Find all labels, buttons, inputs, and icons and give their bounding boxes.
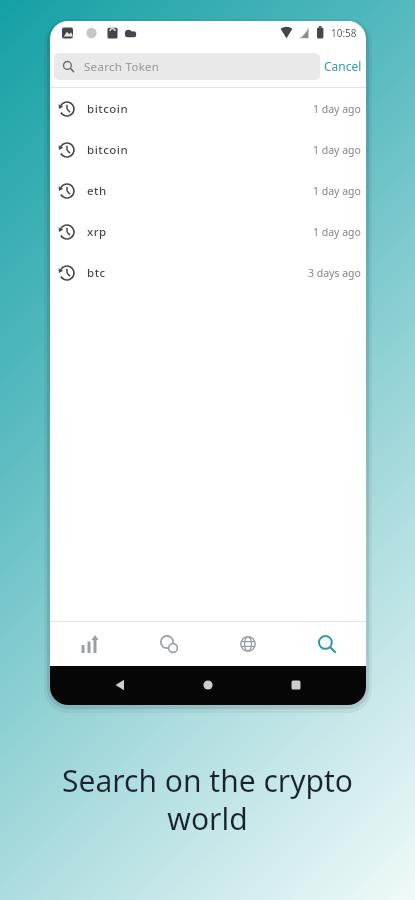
button[interactable] (50, 622, 129, 666)
button[interactable]: eth (50, 170, 366, 211)
button[interactable] (287, 622, 366, 666)
staticText: Search on the crypto world (62, 760, 353, 839)
button[interactable] (164, 670, 252, 700)
staticText: bitcoin (87, 101, 129, 117)
button[interactable]: Cancel (324, 45, 362, 87)
staticText: xrp (87, 224, 107, 240)
staticText: 1 day ago (313, 102, 361, 116)
button[interactable] (76, 670, 164, 700)
staticText: 10:58 (331, 26, 357, 40)
button[interactable]: btc (50, 252, 366, 293)
staticText: Cancel (324, 58, 362, 74)
staticText: 1 day ago (313, 225, 361, 239)
staticText: eth (87, 183, 107, 199)
staticText: 3 days ago (308, 266, 361, 280)
staticText: 1 day ago (313, 184, 361, 198)
staticText: 1 day ago (313, 143, 361, 157)
button[interactable]: xrp (50, 211, 366, 252)
button[interactable]: bitcoin (50, 129, 366, 170)
button[interactable] (208, 622, 287, 666)
staticText: Search Token (84, 59, 160, 75)
staticText: bitcoin (87, 142, 129, 158)
button[interactable]: Search Token (54, 53, 320, 80)
staticText: btc (87, 265, 106, 281)
button[interactable]: bitcoin (50, 88, 366, 129)
button[interactable] (129, 622, 208, 666)
button[interactable] (252, 670, 340, 700)
